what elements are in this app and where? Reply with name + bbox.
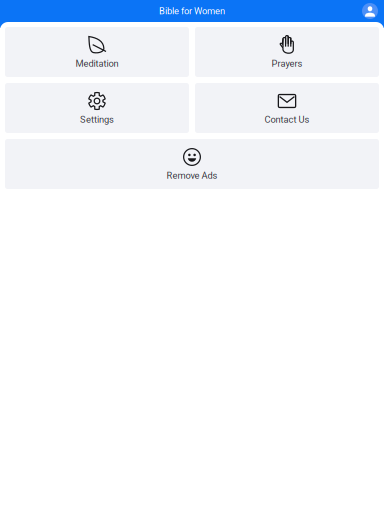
button[interactable]: Meditation (5, 27, 189, 77)
button[interactable]: Prayers (195, 27, 379, 77)
staticText: Prayers (271, 58, 302, 69)
staticText: Meditation (75, 58, 118, 69)
staticText: Remove Ads (166, 170, 217, 181)
button[interactable]: Contact Us (195, 83, 379, 133)
button[interactable]: Remove Ads (5, 139, 379, 189)
staticText: Bible for Women (159, 5, 225, 16)
staticText: Contact Us (264, 114, 309, 125)
staticText: Settings (80, 114, 114, 125)
button[interactable]: Account (362, 3, 378, 19)
button[interactable]: Settings (5, 83, 189, 133)
